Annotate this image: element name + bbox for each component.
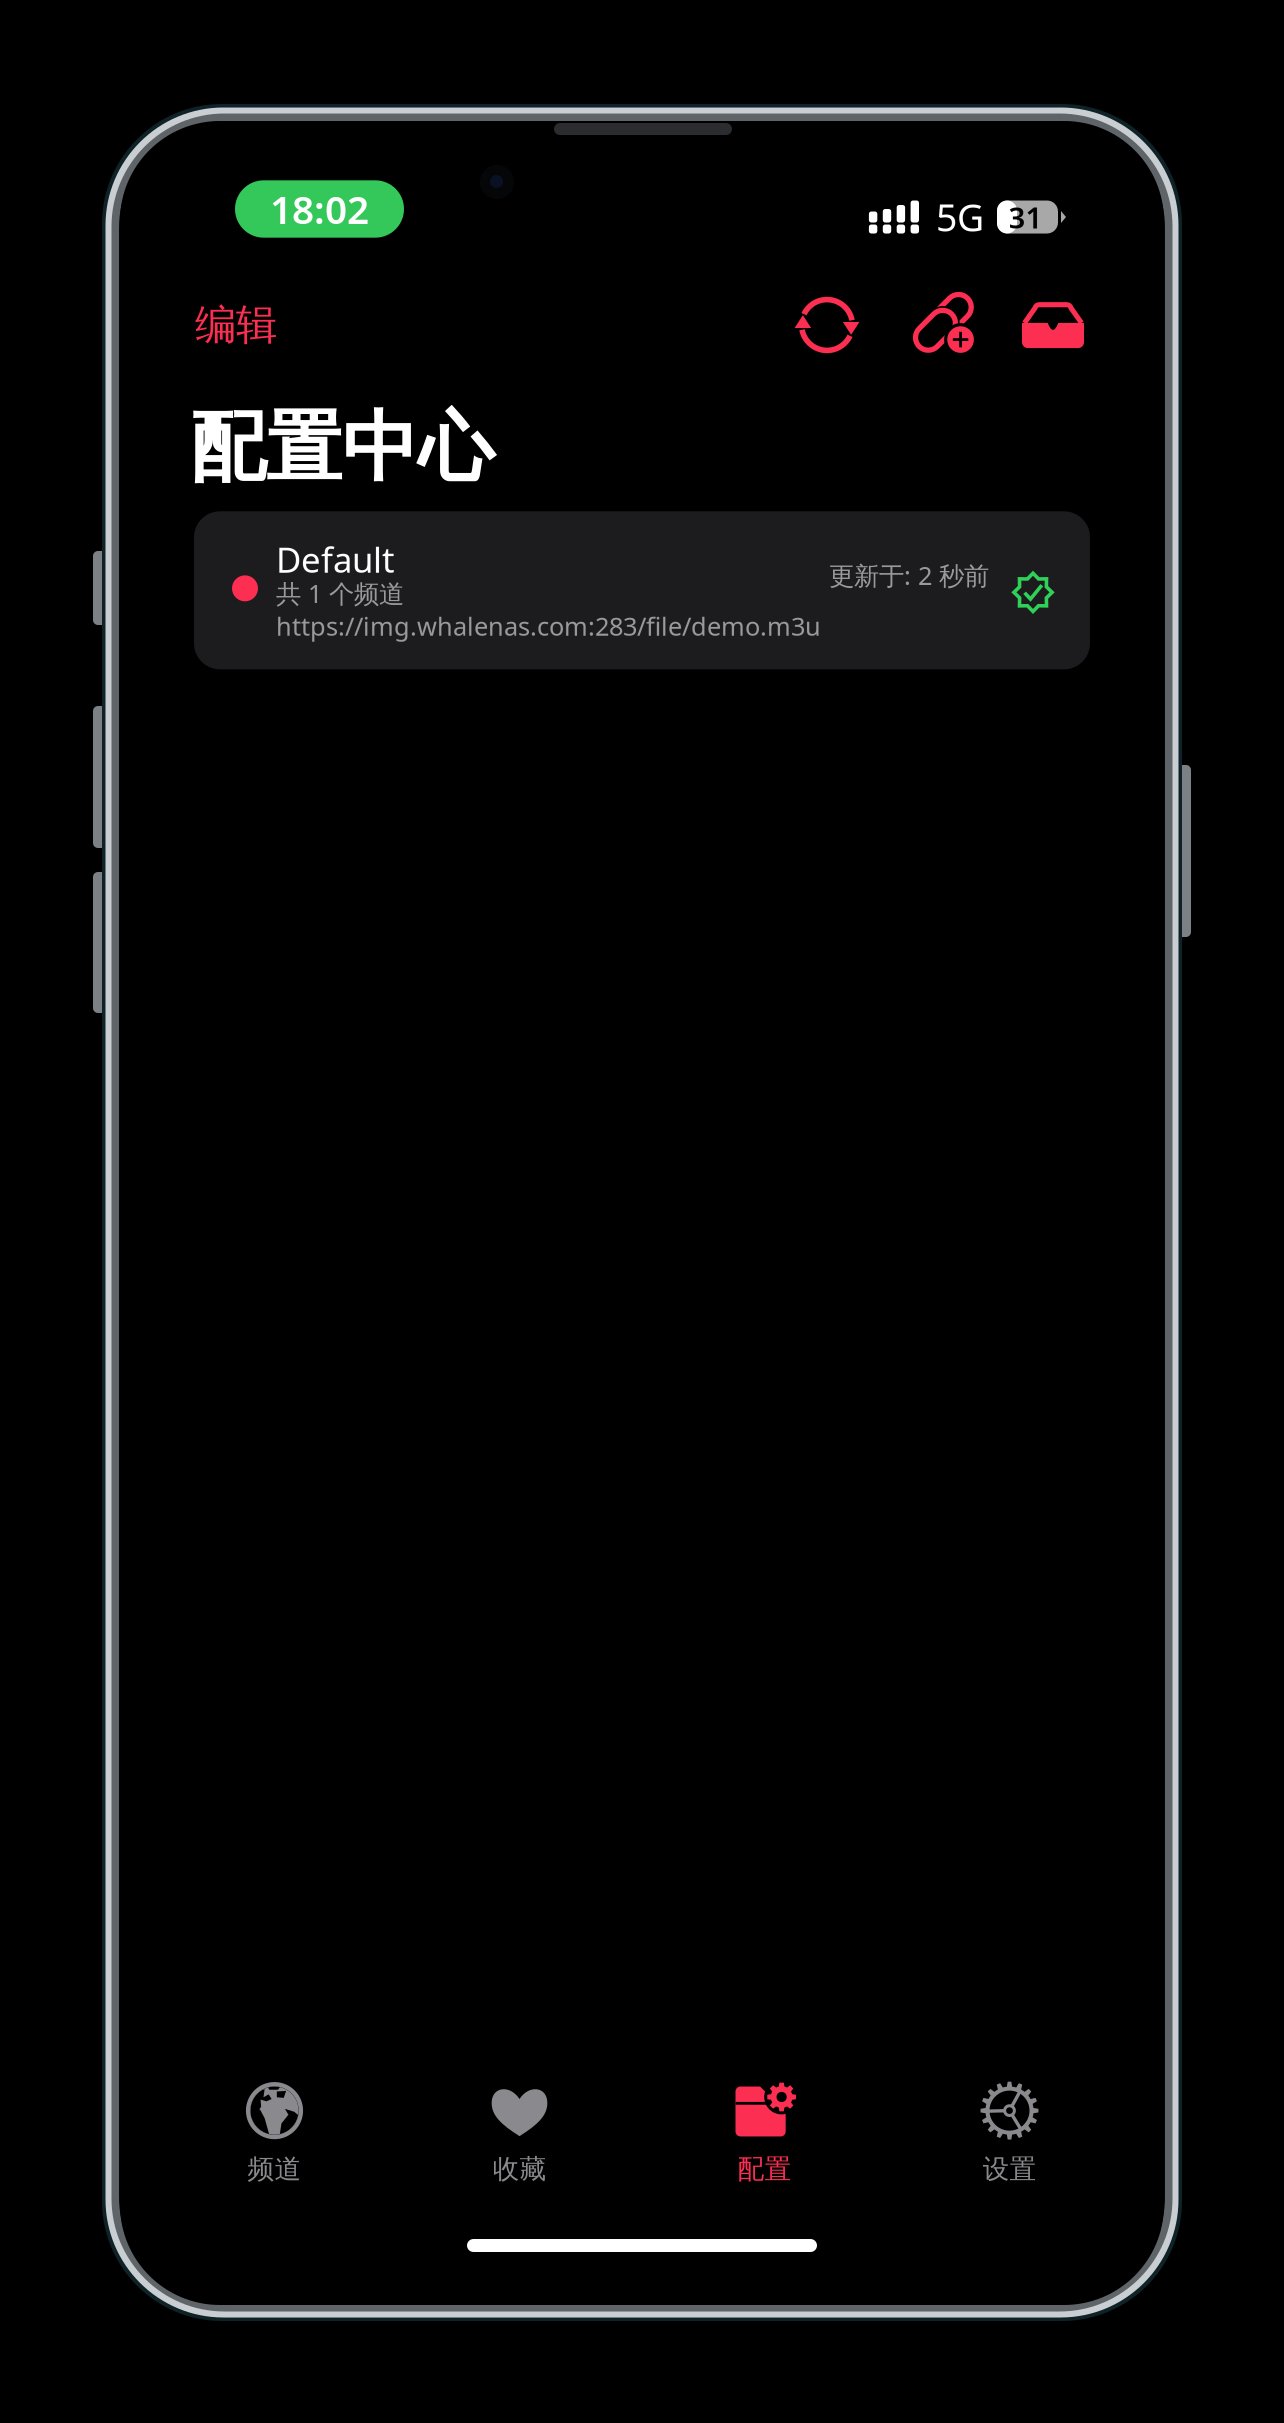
button[interactable]: 频道: [152, 2078, 397, 2188]
staticText: https://img.whalenas.com:283/file/demo.m…: [276, 609, 821, 643]
button[interactable]: 配置: [642, 2078, 887, 2188]
button[interactable]: 收藏: [397, 2078, 642, 2188]
staticText: 配置中心: [190, 401, 494, 494]
button[interactable]: 添加链接: [890, 294, 1002, 356]
staticText: 5G: [936, 192, 984, 242]
button[interactable]: 更新于: 2 秒前: [194, 511, 1090, 669]
button[interactable]: 设置: [887, 2078, 1132, 2188]
staticText: 频道: [247, 2153, 301, 2185]
button[interactable]: 导入: [1002, 294, 1104, 356]
button[interactable]: 刷新: [776, 292, 890, 358]
staticText: 收藏: [492, 2153, 546, 2185]
staticText: 31: [1008, 197, 1042, 236]
staticText: 设置: [982, 2153, 1036, 2185]
staticText: 编辑: [195, 300, 277, 350]
staticText: Default: [276, 536, 395, 582]
staticText: 配置: [737, 2153, 791, 2185]
staticText: 18:02: [270, 183, 369, 235]
staticText: 共 1 个频道: [276, 576, 404, 610]
button[interactable]: 编辑: [185, 291, 287, 359]
staticText: 更新于: 2 秒前: [829, 558, 989, 592]
